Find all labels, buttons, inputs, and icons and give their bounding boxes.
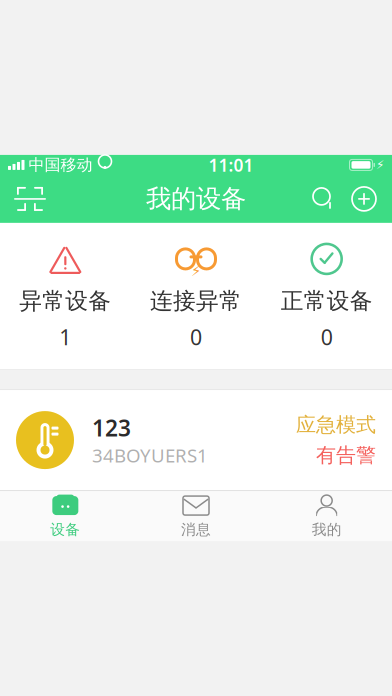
- staticText: 我的: [312, 521, 342, 539]
- button[interactable]: 123: [0, 390, 392, 490]
- staticText: 连接异常: [150, 287, 242, 315]
- staticText: 应急模式: [296, 412, 376, 437]
- staticText: 有告警: [316, 443, 376, 468]
- staticText: 消息: [181, 521, 211, 539]
- staticText: 123: [92, 413, 131, 443]
- button[interactable]: 设备: [0, 491, 131, 541]
- button[interactable]: 添加设备: [344, 177, 384, 221]
- staticText: 我的设备: [146, 183, 246, 214]
- staticText: 0: [190, 323, 202, 351]
- staticText: 11:01: [208, 153, 253, 176]
- button[interactable]: 消息: [131, 491, 261, 541]
- button[interactable]: 搜索: [304, 177, 344, 221]
- staticText: ⚡︎: [191, 263, 201, 279]
- staticText: 0: [321, 323, 333, 351]
- button[interactable]: 正常设备: [261, 223, 392, 369]
- staticText: 异常设备: [19, 287, 111, 315]
- button[interactable]: 扫一扫: [8, 177, 52, 221]
- staticText: 正常设备: [281, 287, 373, 315]
- button[interactable]: 异常设备: [0, 223, 131, 369]
- button[interactable]: 我的: [261, 491, 392, 541]
- staticText: 34BOYUERS1: [92, 443, 208, 467]
- staticText: 1: [59, 323, 71, 351]
- staticText: 设备: [50, 521, 80, 539]
- staticText: ⚡︎: [376, 158, 384, 172]
- staticText: 中国移动: [28, 155, 92, 175]
- button[interactable]: ⚡︎: [131, 223, 261, 369]
